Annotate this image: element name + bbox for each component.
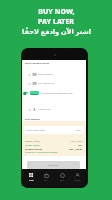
staticText: Payable Amount — [25, 148, 43, 151]
button[interactable]: Place Order — [27, 161, 80, 169]
staticText: اشتر الآن وادفع لاحقًا — [22, 27, 91, 36]
button[interactable]: Home — [24, 173, 38, 186]
staticText: Order Summary — [25, 118, 40, 121]
staticText: including VAT 15.00% where applicable — [25, 151, 58, 153]
button[interactable]: Cash on Delivery — [27, 72, 83, 77]
button[interactable]: Visa / MasterCard — [27, 81, 83, 86]
staticText: Cart — [44, 179, 48, 181]
button[interactable]: Deals — [55, 173, 69, 186]
staticText: 4 interest-free payments with Tabby — [41, 92, 73, 95]
staticText: Subtotal (1 item) — [25, 140, 40, 143]
button[interactable]: Provider Later — [27, 107, 83, 112]
staticText: AED 2,104.00 — [71, 140, 83, 143]
button[interactable]: Cart — [39, 173, 53, 186]
button[interactable]: tabby — [23, 90, 83, 96]
staticText: Provider Later — [38, 108, 51, 111]
staticText: BUY NOW, — [38, 7, 75, 17]
staticText: AED 1,186.65 — [69, 148, 83, 151]
staticText: Have a coupon code? — [26, 129, 45, 132]
button[interactable]: Have a coupon code? — [24, 126, 84, 134]
staticText: Cash on Delivery — [38, 73, 53, 76]
staticText: Home — [29, 179, 34, 181]
staticText: PAY LATER — [38, 17, 74, 27]
staticText: Deals — [60, 179, 65, 181]
staticText: Delivery Charges — [25, 144, 41, 147]
staticText: Select a Payment Method — [25, 62, 50, 65]
staticText: Visa / MasterCard — [38, 82, 54, 85]
staticText: FREE — [78, 144, 83, 147]
button[interactable]: Account — [70, 173, 84, 186]
staticText: tabby — [31, 92, 38, 95]
staticText: APPLY — [76, 129, 82, 131]
staticText: Place Order — [48, 164, 59, 167]
staticText: Account — [74, 179, 81, 181]
